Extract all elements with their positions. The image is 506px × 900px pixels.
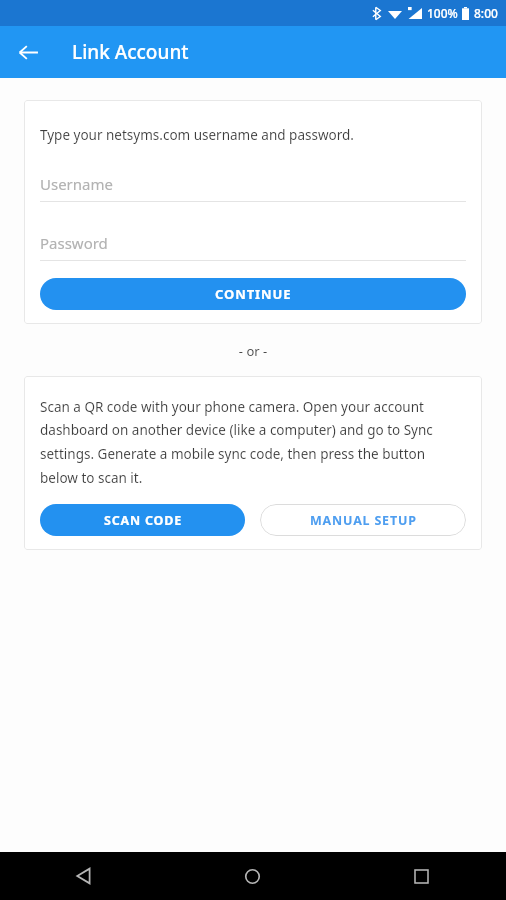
button[interactable]: CONTINUE bbox=[40, 278, 466, 310]
staticText: SCAN CODE bbox=[104, 512, 182, 529]
button[interactable]: Recent apps bbox=[337, 852, 506, 900]
button[interactable]: Back bbox=[0, 852, 168, 900]
staticText: Type your netsyms.com username and passw… bbox=[40, 126, 354, 144]
staticText: Scan a QR code with your phone camera. O… bbox=[40, 398, 466, 487]
staticText: - or - bbox=[0, 342, 506, 360]
button[interactable]: Home bbox=[168, 852, 337, 900]
button[interactable]: MANUAL SETUP bbox=[260, 504, 466, 536]
button[interactable]: Navigate up bbox=[8, 32, 48, 72]
staticText: MANUAL SETUP bbox=[310, 512, 417, 529]
staticText: Password bbox=[40, 233, 108, 253]
staticText: CONTINUE bbox=[215, 285, 292, 303]
staticText: 8:00 bbox=[474, 5, 498, 21]
staticText: Username bbox=[40, 174, 113, 194]
staticText: 100% bbox=[427, 5, 458, 21]
button[interactable]: SCAN CODE bbox=[40, 504, 245, 536]
staticText: Link Account bbox=[72, 39, 189, 65]
